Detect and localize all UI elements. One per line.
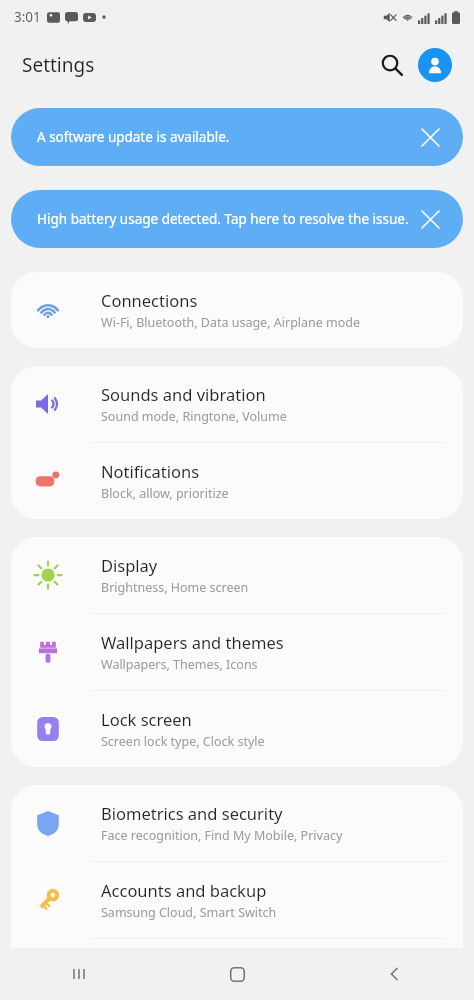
staticText: Samsung Cloud, Smart Switch: [101, 904, 277, 921]
staticText: 3:01: [14, 8, 41, 26]
staticText: Block, allow, prioritize: [101, 485, 229, 502]
button[interactable]: Display: [11, 537, 463, 613]
button[interactable]: Sounds and vibration: [11, 366, 463, 442]
button[interactable]: Dismiss: [411, 118, 449, 156]
staticText: Brightness, Home screen: [101, 579, 249, 596]
staticText: Face recognition, Find My Mobile, Privac…: [101, 827, 343, 844]
button[interactable]: Recents: [0, 948, 158, 1000]
button[interactable]: Connections: [11, 272, 463, 348]
button[interactable]: Biometrics and security: [11, 785, 463, 861]
button[interactable]: High battery usage detected. Tap here to…: [11, 190, 463, 248]
staticText: Settings: [22, 52, 370, 78]
staticText: Sound mode, Ringtone, Volume: [101, 408, 287, 425]
staticText: Screen lock type, Clock style: [101, 733, 265, 750]
staticText: Wallpapers and themes: [101, 631, 284, 653]
staticText: Connections: [101, 289, 198, 311]
button[interactable]: Home: [158, 948, 316, 1000]
staticText: High battery usage detected. Tap here to…: [37, 210, 411, 228]
button[interactable]: Notifications: [11, 443, 463, 519]
staticText: Wi-Fi, Bluetooth, Data usage, Airplane m…: [101, 314, 361, 331]
button[interactable]: Search: [370, 43, 414, 87]
button[interactable]: Dismiss: [411, 200, 449, 238]
staticText: Lock screen: [101, 708, 192, 730]
button[interactable]: Wallpapers and themes: [11, 614, 463, 690]
button[interactable]: Lock screen: [11, 691, 463, 767]
staticText: Biometrics and security: [101, 802, 283, 824]
button[interactable]: A software update is available.: [11, 108, 463, 166]
button[interactable]: Back: [316, 948, 474, 1000]
staticText: Sounds and vibration: [101, 383, 266, 405]
staticText: Wallpapers, Themes, Icons: [101, 656, 258, 673]
staticText: A software update is available.: [37, 128, 411, 146]
button[interactable]: Account: [418, 48, 452, 82]
staticText: Notifications: [101, 460, 200, 482]
staticText: Accounts and backup: [101, 879, 267, 901]
staticText: Display: [101, 554, 158, 576]
button[interactable]: Google: [11, 939, 463, 1000]
button[interactable]: Accounts and backup: [11, 862, 463, 938]
